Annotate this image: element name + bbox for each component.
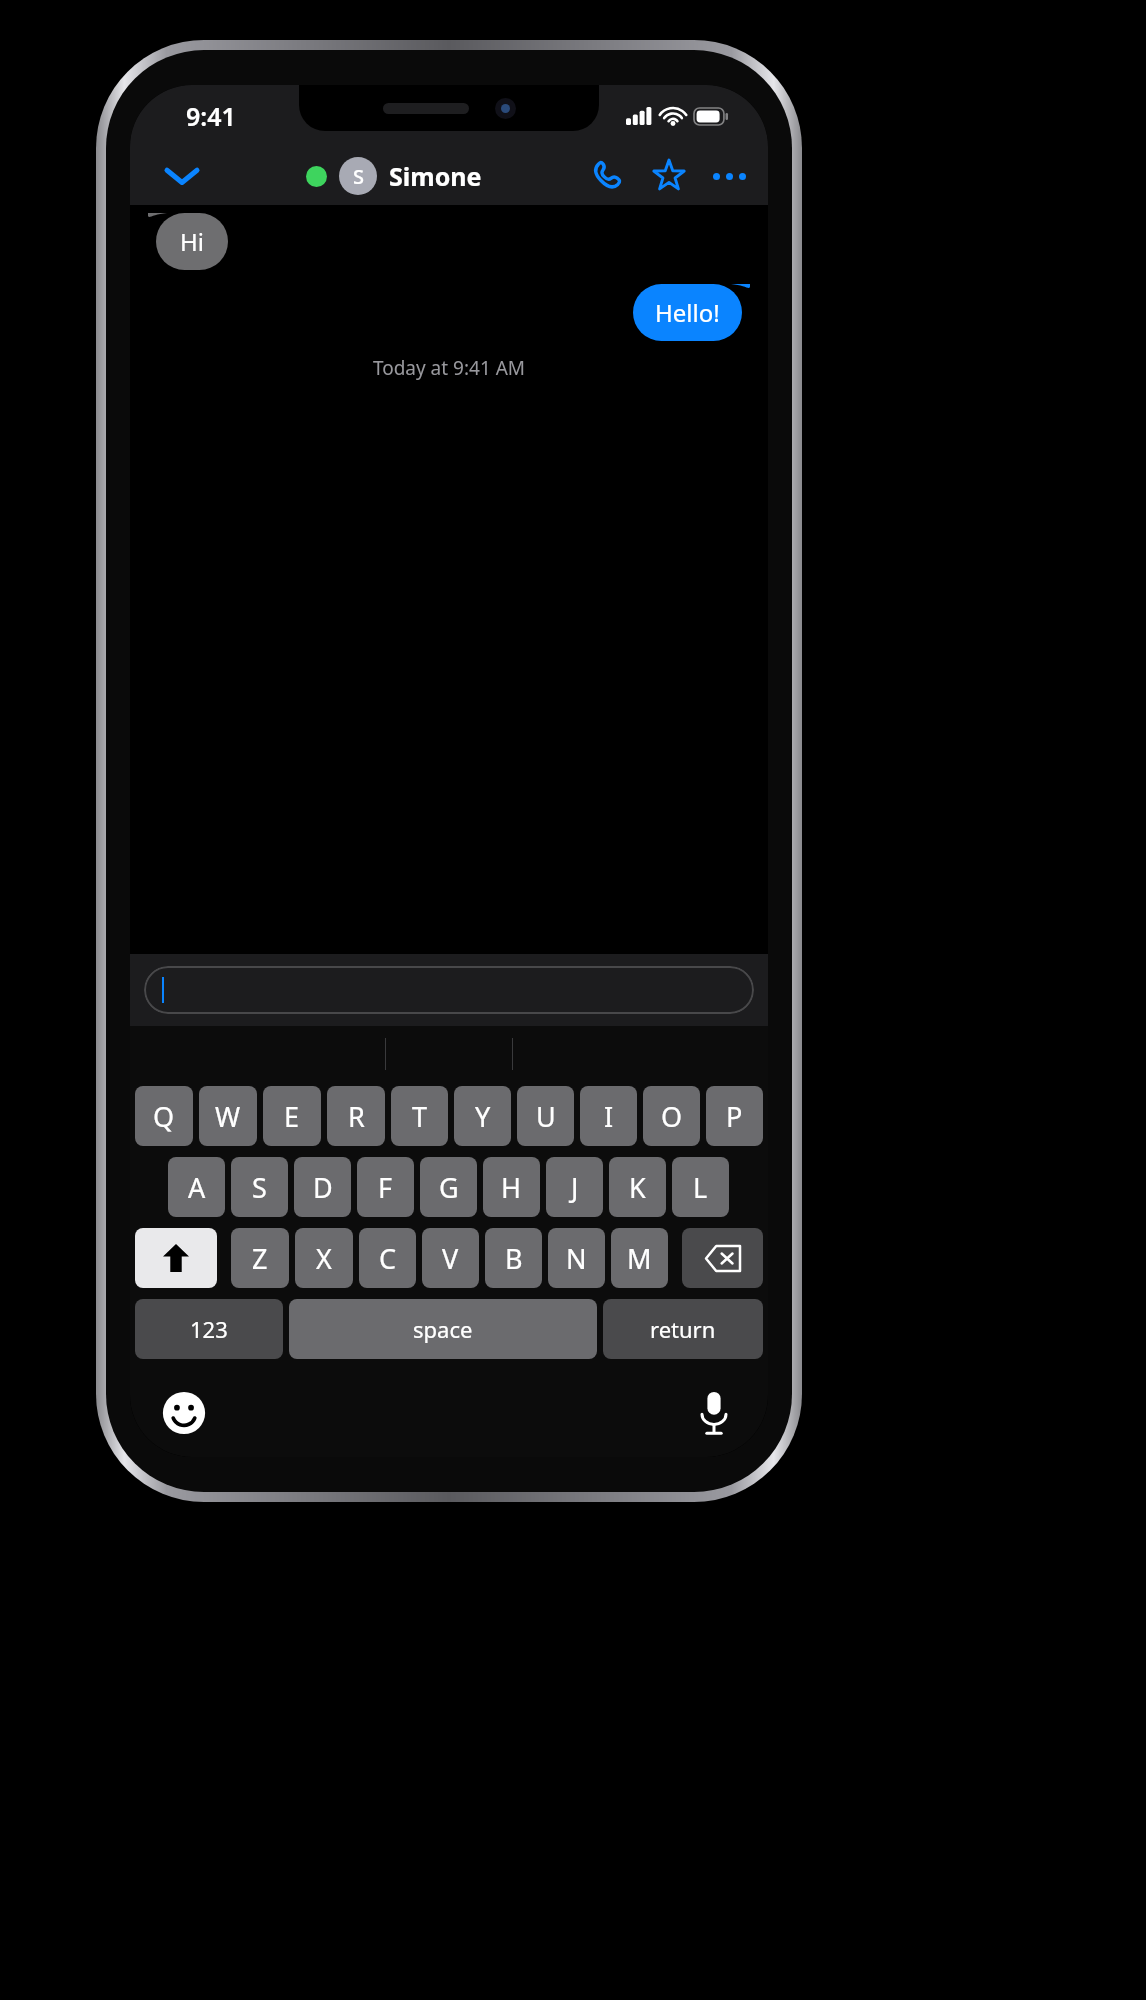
button[interactable]: T (391, 1086, 448, 1146)
button[interactable]: S (231, 1157, 288, 1217)
staticText: Hi (180, 225, 204, 258)
staticText: S (252, 1169, 267, 1206)
button[interactable]: space (289, 1299, 597, 1359)
button[interactable]: S (339, 157, 377, 195)
staticText: M (627, 1240, 652, 1277)
button[interactable]: F (357, 1157, 414, 1217)
button[interactable]: E (263, 1086, 321, 1146)
button[interactable]: P (706, 1086, 763, 1146)
button[interactable]: O (643, 1086, 700, 1146)
staticText: A (188, 1169, 206, 1206)
button[interactable]: Hello! (633, 284, 750, 341)
staticText: Q (153, 1098, 175, 1135)
button[interactable]: H (483, 1157, 540, 1217)
button[interactable]: M (611, 1228, 668, 1288)
staticText: U (536, 1098, 556, 1135)
button[interactable]: Simone (389, 159, 482, 193)
button[interactable]: Emoji (158, 1387, 210, 1439)
button[interactable]: A (168, 1157, 225, 1217)
staticText: I (604, 1098, 614, 1135)
button[interactable]: I (580, 1086, 637, 1146)
staticText: Hello! (655, 296, 720, 329)
button[interactable]: More options (706, 153, 752, 199)
button[interactable]: 123 (135, 1299, 283, 1359)
staticText: V (442, 1240, 459, 1277)
button[interactable]: Dictation (688, 1387, 740, 1439)
button[interactable]: C (359, 1228, 416, 1288)
button[interactable]: N (548, 1228, 605, 1288)
staticText: R (348, 1098, 365, 1135)
button[interactable]: R (327, 1086, 385, 1146)
staticText: D (313, 1169, 333, 1206)
button[interactable]: Q (135, 1086, 193, 1146)
staticText: H (501, 1169, 522, 1206)
button[interactable]: D (294, 1157, 351, 1217)
staticText: 9:41 (186, 99, 236, 133)
button[interactable]: Collapse (160, 154, 204, 198)
staticText: K (629, 1169, 646, 1206)
staticText: O (661, 1098, 683, 1135)
button[interactable]: Y (454, 1086, 511, 1146)
button[interactable]: X (295, 1228, 353, 1288)
staticText: Z (252, 1240, 268, 1277)
button[interactable]: B (485, 1228, 542, 1288)
button[interactable]: L (672, 1157, 729, 1217)
button[interactable]: V (422, 1228, 479, 1288)
button[interactable]: Backspace (682, 1228, 763, 1288)
staticText: 123 (190, 1314, 228, 1344)
button[interactable]: J (546, 1157, 603, 1217)
button[interactable]: W (199, 1086, 257, 1146)
button[interactable]: Shift (135, 1228, 217, 1288)
staticText: T (412, 1098, 428, 1135)
staticText: J (571, 1169, 579, 1206)
button[interactable]: return (603, 1299, 763, 1359)
button[interactable] (144, 966, 754, 1014)
staticText: G (439, 1169, 459, 1206)
button[interactable]: Hi (148, 213, 228, 270)
button[interactable]: Call (584, 153, 630, 199)
staticText: E (284, 1098, 300, 1135)
staticText: Today at 9:41 AM (130, 355, 768, 381)
staticText: Y (475, 1098, 491, 1135)
staticText: L (693, 1169, 708, 1206)
button[interactable]: Favorite (646, 153, 692, 199)
staticText: S (353, 163, 364, 190)
staticText: B (505, 1240, 523, 1277)
staticText: N (566, 1240, 587, 1277)
staticText: space (413, 1314, 473, 1344)
staticText: P (726, 1098, 743, 1135)
staticText: C (379, 1240, 397, 1277)
button[interactable]: G (420, 1157, 477, 1217)
staticText: F (378, 1169, 393, 1206)
button[interactable]: U (517, 1086, 574, 1146)
staticText: X (316, 1240, 332, 1277)
button[interactable]: K (609, 1157, 666, 1217)
button[interactable]: Z (231, 1228, 289, 1288)
staticText: return (650, 1314, 716, 1344)
staticText: W (215, 1098, 241, 1135)
